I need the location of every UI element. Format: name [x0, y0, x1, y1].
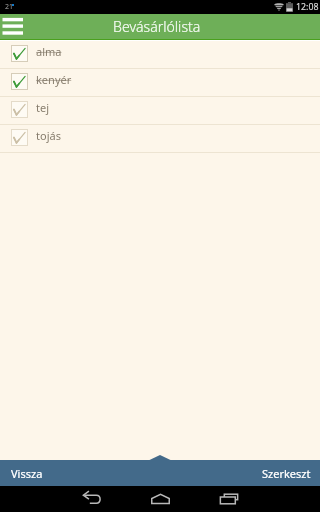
- button[interactable]: Recents: [205, 486, 252, 512]
- staticText: kenyér: [36, 72, 72, 87]
- staticText: Vissza: [11, 466, 43, 481]
- staticText: Bevásárlólista: [113, 17, 201, 36]
- button[interactable]: kenyér: [0, 68, 320, 96]
- button[interactable]: Szerkeszt: [254, 461, 320, 486]
- staticText: alma: [36, 44, 62, 59]
- button[interactable]: Home: [136, 486, 184, 512]
- button[interactable]: Vissza: [0, 461, 51, 486]
- button[interactable]: Menu: [0, 14, 26, 39]
- button[interactable]: tej: [0, 96, 320, 124]
- staticText: 12:08: [296, 1, 319, 13]
- button[interactable]: alma: [0, 40, 320, 68]
- staticText: tej: [36, 100, 50, 115]
- button[interactable]: Back: [68, 486, 115, 512]
- button[interactable]: tojás: [0, 124, 320, 152]
- staticText: 21: [5, 2, 14, 12]
- staticText: Szerkeszt: [262, 466, 311, 481]
- staticText: tojás: [36, 128, 61, 143]
